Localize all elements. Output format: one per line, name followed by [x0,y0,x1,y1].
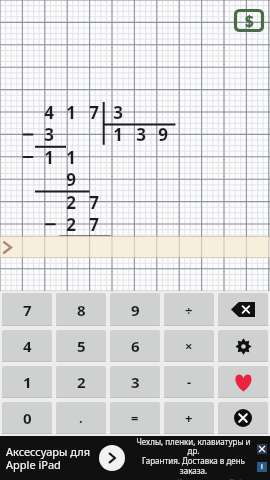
staticText: - [187,373,192,391]
staticText: 7 [89,191,99,213]
button[interactable]: Ad info [257,462,267,472]
staticText: 0 [89,235,99,257]
staticText: 7 [89,213,99,235]
staticText: = [131,409,139,427]
staticText: × [185,337,193,355]
button[interactable]: 9 [110,293,160,326]
staticText: $ [245,11,254,31]
staticText: + [185,409,193,427]
staticText: 2 [66,213,76,235]
button[interactable]: 4 [2,330,52,362]
button[interactable]: 7 [2,293,52,326]
button[interactable]: 1 [2,366,52,398]
staticText: 4 [44,101,54,123]
staticText: 8 [77,300,86,320]
button[interactable]: Open advertisement [99,445,125,471]
button[interactable]: - [164,366,214,398]
button[interactable]: . [56,402,106,434]
staticText: 9 [158,123,168,145]
button[interactable]: 8 [56,293,106,326]
staticText: 1 [66,101,76,123]
staticText: 3 [136,123,146,145]
button[interactable]: 2 [56,366,106,398]
staticText: Чехлы, пленки, клавиатуры и др. Гарантия… [131,436,256,477]
staticText: 2 [66,191,76,213]
staticText: 9 [66,168,76,190]
staticText: 2 [77,372,86,392]
staticText: upstore.ru/Аксессуары_для_iPad [147,477,241,480]
button[interactable]: Аксессуары для Apple iPad [0,436,270,480]
staticText: 3 [131,372,140,392]
button[interactable]: ÷ [164,293,214,326]
button[interactable]: 3 [110,366,160,398]
staticText: 7 [23,300,32,320]
button[interactable]: 6 [110,330,160,362]
staticText: 1 [23,372,32,392]
button[interactable]: = [110,402,160,434]
staticText: 6 [131,336,140,356]
staticText: 4 [23,336,32,356]
button[interactable]: × [164,330,214,362]
button[interactable]: Close [218,402,268,434]
staticText: 1 [44,146,54,168]
staticText: 1 [66,146,76,168]
staticText: 7 [89,101,99,123]
staticText: i [261,462,263,472]
staticText: ÷ [185,301,193,319]
staticText: 3 [44,123,54,145]
button[interactable]: Backspace [218,293,268,326]
button[interactable]: Settings [218,330,268,362]
staticText: 0 [23,408,32,428]
button[interactable]: Buy / remove ads [234,9,264,32]
staticText: 1 [113,123,123,145]
staticText: 3 [113,101,123,123]
staticText: 9 [131,300,140,320]
button[interactable]: + [164,402,214,434]
staticText: 5 [77,336,86,356]
button[interactable]: 5 [56,330,106,362]
button[interactable] [0,236,270,258]
staticText: . [79,409,83,427]
button[interactable]: 0 [2,402,52,434]
staticText: Аксессуары для Apple iPad [6,444,91,472]
button[interactable]: Close ad [257,444,267,454]
button[interactable]: Favorite [218,366,268,398]
